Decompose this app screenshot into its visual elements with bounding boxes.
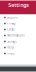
button[interactable]: Chats xyxy=(0,26,36,32)
button[interactable]: Help xyxy=(0,44,36,50)
staticText: Privacy xyxy=(7,22,15,25)
button[interactable]: Account xyxy=(0,14,36,20)
button[interactable]: Privacy xyxy=(0,20,36,26)
staticText: Help xyxy=(7,46,14,49)
button[interactable]: Invite xyxy=(0,50,36,56)
staticText: Settings xyxy=(8,1,29,9)
staticText: Invite xyxy=(7,52,15,55)
staticText: Account xyxy=(7,16,18,19)
staticText: Storage xyxy=(7,40,17,43)
staticText: Notifications xyxy=(7,34,24,37)
button[interactable]: Notifications xyxy=(0,32,36,38)
button[interactable]: Storage xyxy=(0,38,36,44)
staticText: Chats xyxy=(7,28,14,31)
